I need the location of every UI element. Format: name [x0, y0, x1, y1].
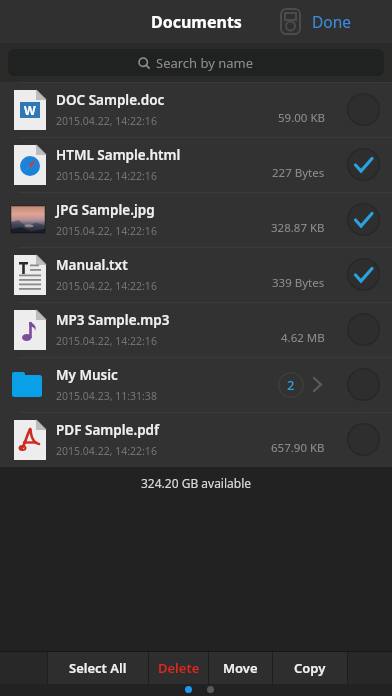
- button[interactable]: [347, 148, 380, 181]
- button[interactable]: Move: [209, 652, 272, 684]
- staticText: MP3 Sample.mp3: [56, 311, 170, 329]
- button[interactable]: Done: [312, 11, 352, 32]
- staticText: 328.87 KB: [271, 220, 325, 236]
- staticText: My Music: [56, 366, 118, 384]
- staticText: 2015.04.22, 14:22:16: [56, 334, 157, 348]
- staticText: Copy: [294, 659, 326, 677]
- staticText: DOC Sample.doc: [56, 91, 165, 109]
- staticText: 2015.04.22, 14:22:16: [56, 224, 157, 238]
- button[interactable]: [347, 258, 380, 291]
- staticText: 2: [287, 376, 295, 394]
- button[interactable]: Select All: [48, 652, 148, 684]
- staticText: 657.90 KB: [271, 440, 325, 456]
- staticText: 2015.04.22, 14:22:16: [56, 114, 157, 128]
- staticText: 339 Bytes: [272, 275, 325, 291]
- button[interactable]: HTML Sample.html: [0, 137, 392, 192]
- staticText: PDF Sample.pdf: [56, 421, 160, 439]
- staticText: Manual.txt: [56, 256, 128, 274]
- staticText: 59.00 KB: [278, 110, 325, 126]
- staticText: 2015.04.22, 14:22:16: [56, 169, 157, 183]
- button[interactable]: My Music: [0, 357, 392, 412]
- staticText: Select All: [69, 659, 127, 677]
- button[interactable]: Manual.txt: [0, 247, 392, 302]
- staticText: Move: [223, 659, 258, 677]
- staticText: Done: [312, 11, 352, 32]
- staticText: Search by name: [156, 54, 254, 72]
- staticText: W: [24, 102, 36, 118]
- staticText: Delete: [158, 659, 200, 677]
- staticText: Documents: [151, 11, 242, 33]
- staticText: 227 Bytes: [272, 165, 325, 181]
- button[interactable]: JPG Sample.jpg: [0, 192, 392, 247]
- button[interactable]: Copy: [273, 652, 347, 684]
- button[interactable]: [280, 8, 301, 35]
- staticText: 2015.04.23, 11:31:38: [56, 389, 157, 403]
- staticText: JPG Sample.jpg: [56, 201, 155, 219]
- staticText: HTML Sample.html: [56, 146, 181, 164]
- button[interactable]: W: [0, 82, 392, 137]
- staticText: 2015.04.22, 14:22:16: [56, 444, 157, 458]
- button[interactable]: MP3 Sample.mp3: [0, 302, 392, 357]
- staticText: 4.62 MB: [281, 330, 325, 346]
- button[interactable]: Delete: [149, 652, 208, 684]
- button[interactable]: [347, 203, 380, 236]
- button[interactable]: PDF Sample.pdf: [0, 412, 392, 467]
- staticText: 324.20 GB available: [141, 475, 252, 491]
- button[interactable]: Search by name: [8, 49, 384, 76]
- staticText: 2015.04.22, 14:22:16: [56, 279, 157, 293]
